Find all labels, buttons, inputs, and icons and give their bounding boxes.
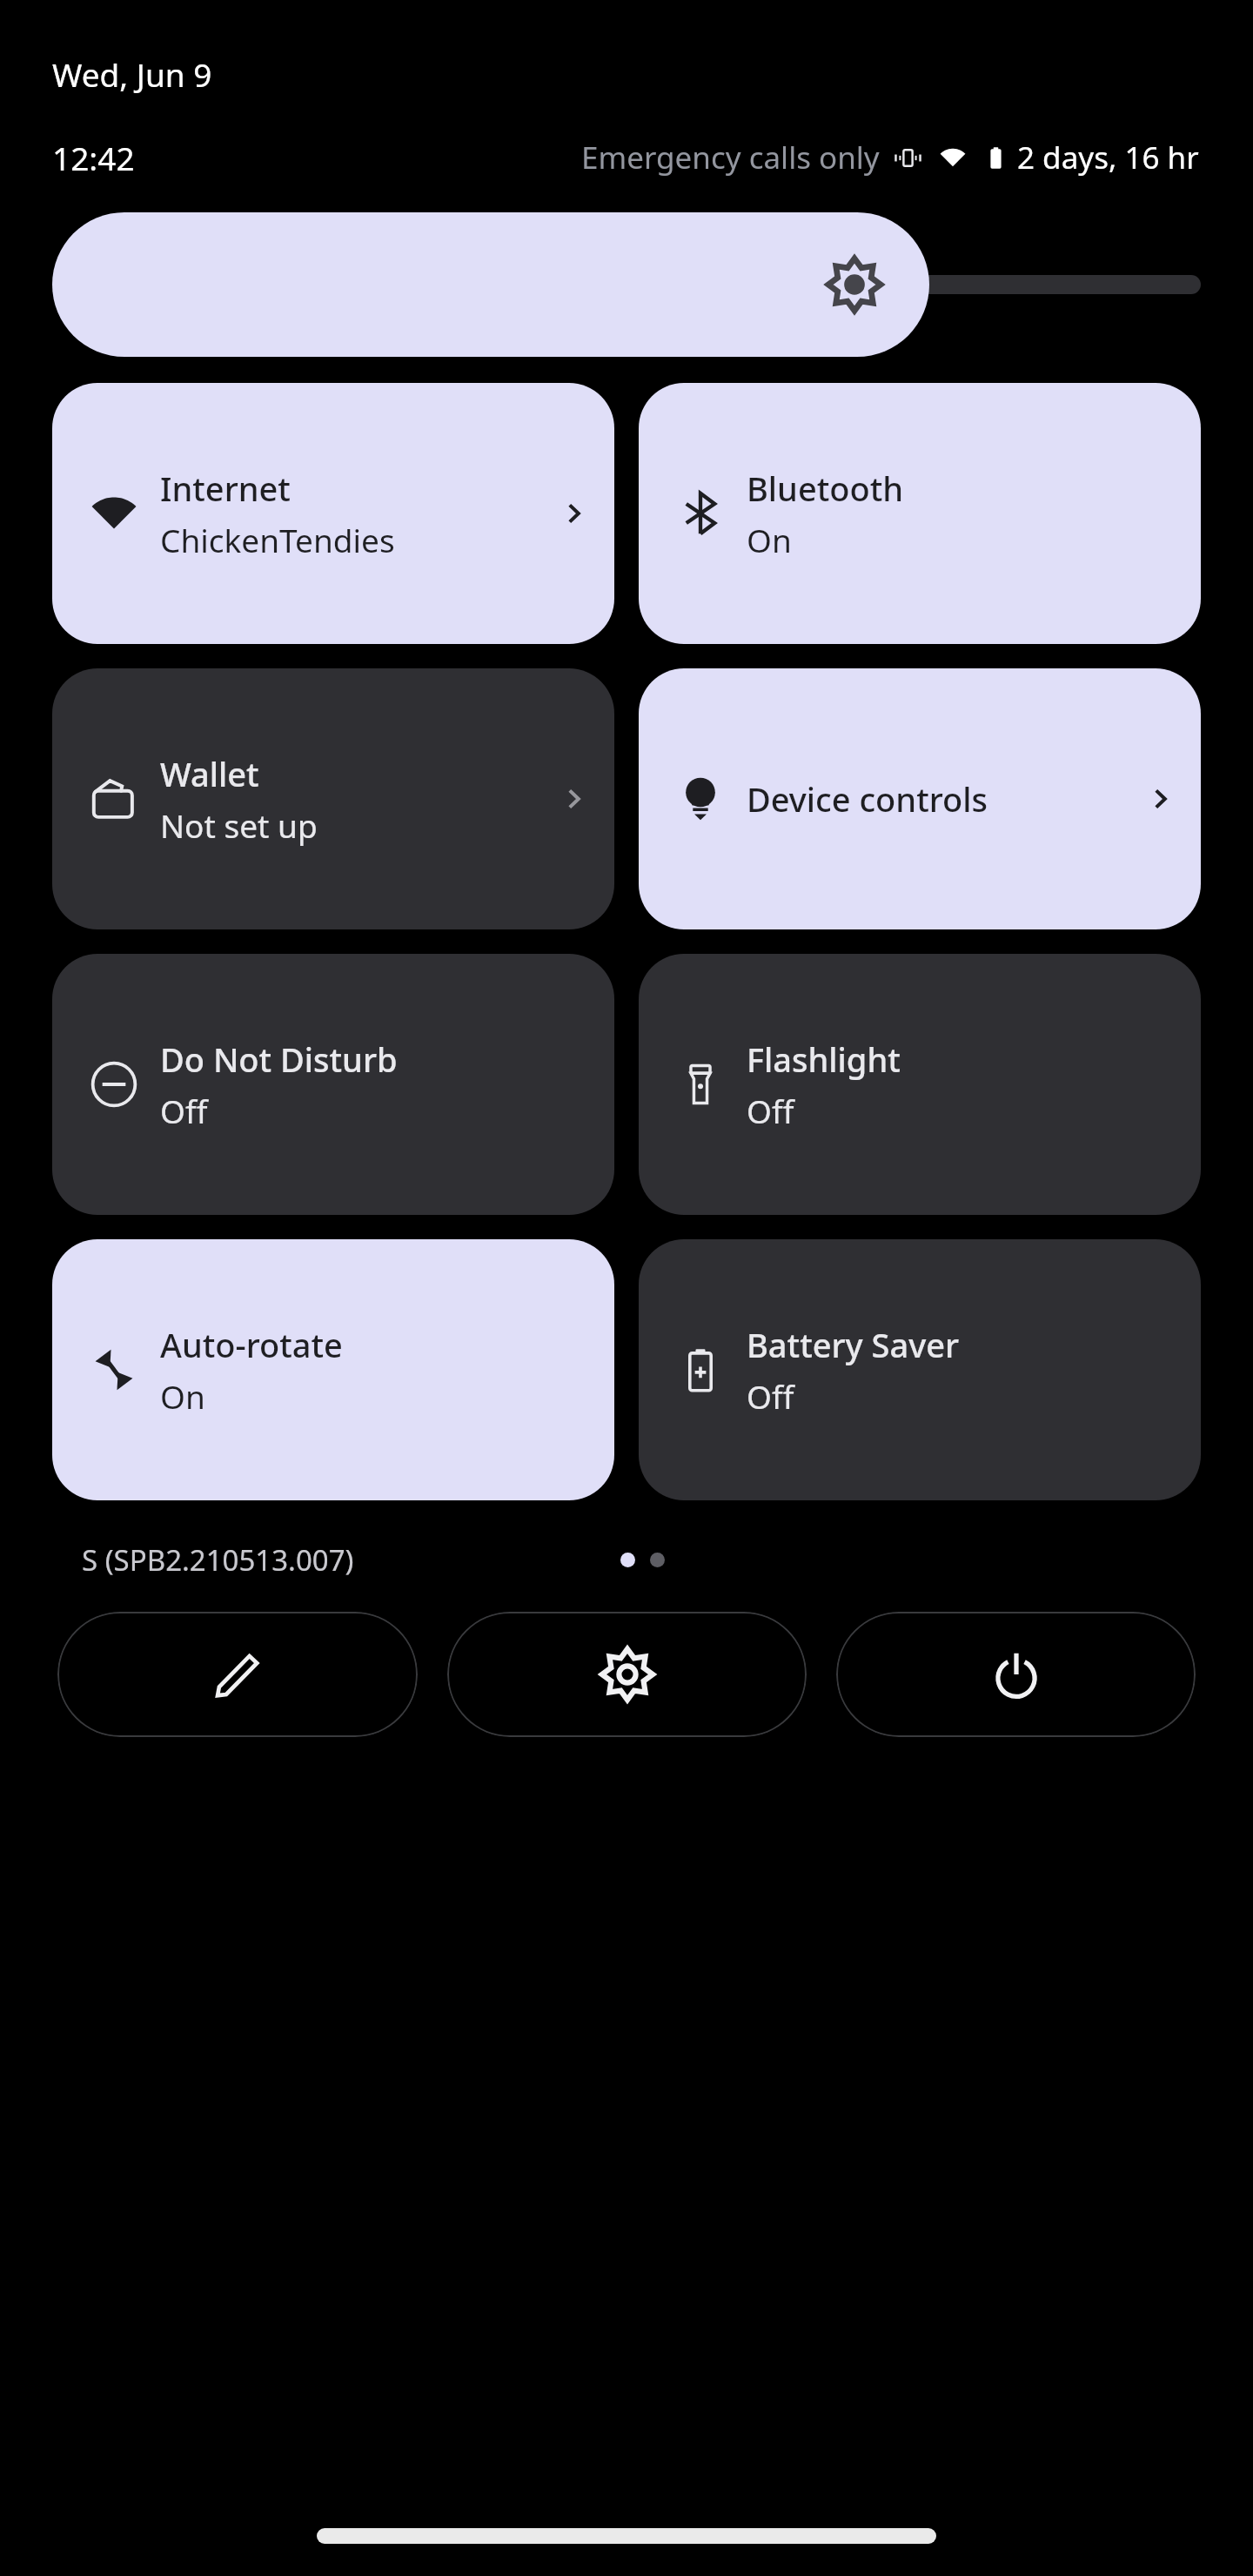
button[interactable]: Power	[836, 1612, 1196, 1737]
staticText: Auto-rotate	[160, 1322, 343, 1367]
staticText: ChickenTendies	[160, 518, 395, 561]
staticText: Do Not Disturb	[160, 1036, 398, 1082]
staticText: Not set up	[160, 803, 318, 847]
button[interactable]: Edit tiles	[57, 1612, 418, 1737]
staticText: Off	[747, 1089, 794, 1132]
staticText: Off	[160, 1089, 208, 1132]
button[interactable]: Do Not Disturb	[52, 954, 614, 1215]
button[interactable]: Bluetooth	[639, 383, 1201, 644]
button[interactable]: Flashlight	[639, 954, 1201, 1215]
button[interactable]: Brightness	[52, 212, 1201, 357]
staticText: Off	[747, 1374, 794, 1418]
staticText: S (SPB2.210513.007)	[82, 1540, 354, 1580]
staticText: Emergency calls only	[581, 137, 880, 178]
staticText: On	[160, 1374, 205, 1418]
button[interactable]: Battery Saver	[639, 1239, 1201, 1500]
button[interactable]: Device controls	[639, 668, 1201, 929]
other: Vibrate	[894, 144, 922, 172]
staticText: Internet	[160, 466, 291, 511]
button[interactable]: Internet	[52, 383, 614, 644]
staticText: Device controls	[747, 776, 988, 822]
staticText: Wallet	[160, 751, 259, 796]
staticText: Flashlight	[747, 1036, 901, 1082]
staticText: 2 days, 16 hr	[1017, 137, 1199, 178]
button[interactable]: Auto-rotate	[52, 1239, 614, 1500]
staticText: Battery Saver	[747, 1322, 960, 1367]
other: Battery	[982, 144, 1010, 172]
button[interactable]: Wallet	[52, 668, 614, 929]
staticText: Bluetooth	[747, 466, 904, 511]
staticText: Wed, Jun 9	[52, 52, 212, 96]
staticText: On	[747, 518, 792, 561]
other: Wi-Fi	[938, 143, 968, 172]
button[interactable]: Settings	[447, 1612, 807, 1737]
staticText: 12:42	[52, 136, 135, 179]
